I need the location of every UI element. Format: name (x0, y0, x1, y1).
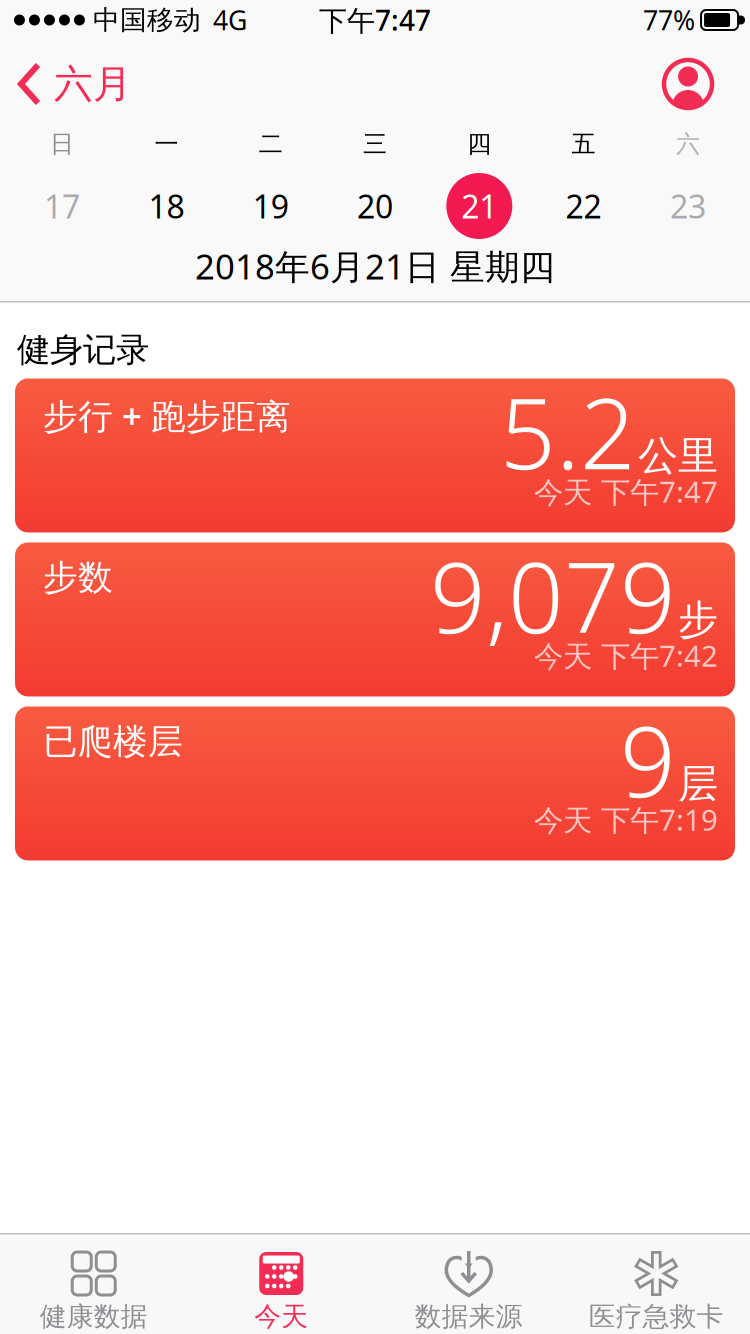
staticText: 日 (50, 129, 74, 159)
button[interactable]: 19 (219, 173, 323, 239)
button[interactable]: 已爬楼层 (15, 706, 735, 860)
staticText: 中国移动 (93, 4, 201, 36)
button[interactable]: 18 (114, 173, 219, 239)
button[interactable] (664, 60, 750, 108)
staticText: 2018年6月21日 星期四 (195, 243, 555, 289)
button[interactable]: 22 (531, 173, 636, 239)
staticText: 公里 (638, 431, 718, 480)
staticText: 今天 下午7:42 (534, 636, 718, 675)
staticText: 9,079 (430, 531, 676, 660)
staticText: 三 (363, 129, 387, 159)
staticText: 六月 (54, 60, 132, 108)
staticText: 今天 下午7:19 (534, 800, 718, 839)
button[interactable]: 23 (636, 173, 740, 239)
staticText: 步行 + 跑步距离 (43, 392, 291, 438)
staticText: 已爬楼层 (43, 720, 183, 763)
staticText: 今天 下午7:47 (534, 472, 718, 511)
button[interactable]: 步数 (15, 542, 735, 696)
button[interactable]: 20 (323, 173, 427, 239)
staticText: 22 (566, 185, 602, 227)
staticText: 五 (572, 129, 596, 159)
staticText: 77% (643, 2, 695, 38)
staticText: 六 (676, 129, 700, 159)
staticText: 18 (148, 185, 184, 227)
button[interactable]: 六月 (0, 60, 132, 108)
staticText: 医疗急救卡 (589, 1300, 724, 1333)
staticText: 步 (678, 595, 718, 644)
button[interactable]: 17 (10, 173, 114, 239)
staticText: 21 (461, 185, 497, 227)
staticText: 今天 (254, 1300, 308, 1333)
staticText: 二 (259, 129, 283, 159)
staticText: 4G (213, 2, 247, 38)
button[interactable]: 21 (427, 173, 531, 239)
staticText: 健康数据 (40, 1300, 148, 1333)
staticText: 数据来源 (415, 1300, 523, 1333)
button[interactable]: 今天 (187, 1251, 375, 1331)
button[interactable]: 健康数据 (0, 1251, 187, 1331)
staticText: 17 (44, 185, 80, 227)
button[interactable]: 数据来源 (375, 1251, 562, 1331)
staticText: 层 (678, 759, 718, 808)
button[interactable]: 步行 + 跑步距离 (15, 378, 735, 532)
staticText: 20 (357, 185, 393, 227)
staticText: 四 (467, 129, 491, 159)
staticText: 健身记录 (17, 329, 149, 370)
staticText: 一 (154, 129, 178, 159)
staticText: 19 (253, 185, 289, 227)
staticText: 步数 (43, 556, 113, 599)
staticText: 9 (620, 695, 676, 824)
staticText: 下午7:47 (319, 1, 431, 39)
button[interactable]: 医疗急救卡 (562, 1251, 750, 1331)
staticText: 23 (670, 185, 706, 227)
staticText: 5.2 (500, 367, 636, 496)
